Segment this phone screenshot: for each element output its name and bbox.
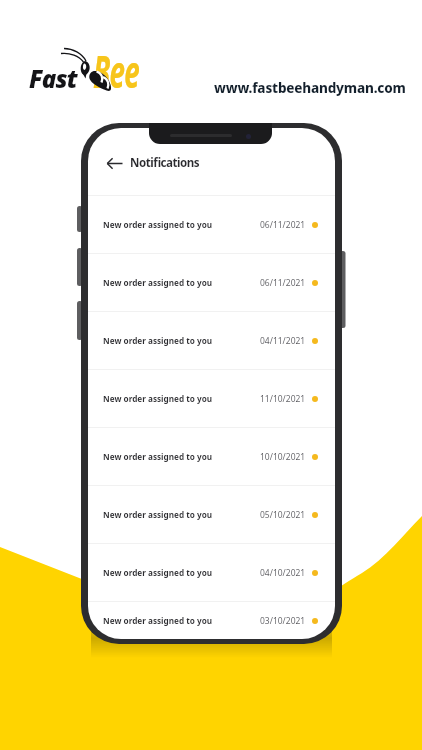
staticText: New order assigned to you <box>103 451 213 462</box>
button[interactable]: New order assigned to you <box>88 428 335 485</box>
staticText: New order assigned to you <box>103 615 213 626</box>
staticText: 05/10/2021 <box>260 509 306 521</box>
staticText: New order assigned to you <box>103 509 213 520</box>
staticText: New order assigned to you <box>103 335 213 346</box>
button[interactable]: Back <box>107 152 129 174</box>
staticText: New order assigned to you <box>103 393 213 404</box>
staticText: 10/10/2021 <box>260 451 306 463</box>
staticText: 11/10/2021 <box>260 393 306 405</box>
button[interactable]: New order assigned to you <box>88 602 335 639</box>
button[interactable]: New order assigned to you <box>88 254 335 311</box>
staticText: Notifications <box>130 155 200 171</box>
button[interactable]: New order assigned to you <box>88 544 335 601</box>
staticText: New order assigned to you <box>103 219 213 230</box>
button[interactable]: New order assigned to you <box>88 370 335 427</box>
button[interactable]: New order assigned to you <box>88 196 335 253</box>
staticText: 06/11/2021 <box>260 277 306 289</box>
staticText: www.fastbeehandyman.com <box>214 79 406 97</box>
button[interactable]: New order assigned to you <box>88 312 335 369</box>
staticText: 06/11/2021 <box>260 219 306 231</box>
staticText: 03/10/2021 <box>260 615 306 627</box>
staticText: 04/11/2021 <box>260 335 306 347</box>
staticText: New order assigned to you <box>103 567 213 578</box>
staticText: Bee <box>93 41 140 96</box>
staticText: 04/10/2021 <box>260 567 306 579</box>
staticText: New order assigned to you <box>103 277 213 288</box>
staticText: Fast <box>29 62 78 95</box>
button[interactable]: New order assigned to you <box>88 486 335 543</box>
